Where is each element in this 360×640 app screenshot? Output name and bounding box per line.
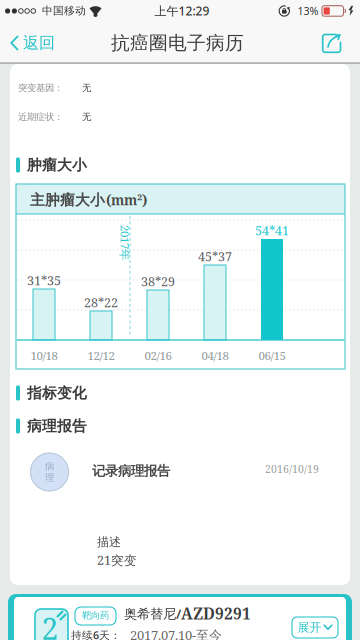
staticText: 12/12: [87, 348, 114, 363]
staticText: 近期症状：: [18, 111, 63, 123]
staticText: 28*22: [84, 294, 118, 311]
staticText: 31*35: [27, 272, 61, 289]
button[interactable]: 返回: [10, 23, 68, 63]
staticText: 描述: [97, 535, 121, 549]
staticText: 04/18: [201, 348, 228, 363]
staticText: 02/16: [144, 348, 171, 363]
staticText: 奥希替尼/: [124, 605, 181, 622]
staticText: 抗癌圈电子病历: [111, 31, 244, 54]
staticText: 病理报告: [27, 417, 87, 435]
staticText: 06/15: [258, 348, 285, 363]
staticText: 持续6天：: [71, 628, 121, 640]
staticText: 展开: [297, 620, 321, 635]
staticText: 38*29: [141, 273, 175, 290]
staticText: 2017.07.10-至今: [130, 626, 222, 640]
staticText: 无: [82, 111, 91, 123]
staticText: 中国移动: [42, 4, 86, 17]
staticText: AZD9291: [181, 603, 251, 624]
staticText: 10/18: [30, 348, 57, 363]
staticText: (mm²): [106, 191, 147, 209]
staticText: 无: [82, 82, 91, 94]
staticText: 2016/10/19: [265, 462, 319, 476]
staticText: 2017年: [107, 235, 143, 251]
staticText: 指标变化: [27, 384, 87, 402]
staticText: 理: [45, 472, 54, 483]
staticText: 病: [45, 460, 54, 472]
staticText: 靶向药: [82, 610, 109, 621]
staticText: 54*41: [255, 222, 289, 239]
staticText: 2: [41, 608, 58, 640]
staticText: 45*37: [198, 248, 232, 265]
staticText: 返回: [23, 33, 55, 53]
button[interactable]: 病: [10, 441, 350, 497]
staticText: 突变基因：: [18, 82, 63, 94]
button[interactable]: 编辑: [311, 22, 352, 63]
staticText: 肿瘤大小: [27, 156, 87, 174]
staticText: 上午12:29: [154, 3, 209, 19]
staticText: 主肿瘤大小: [30, 191, 105, 209]
button[interactable]: 展开: [292, 617, 338, 638]
staticText: 13%: [297, 4, 318, 18]
staticText: 21突变: [97, 551, 137, 568]
staticText: 记录病理报告: [92, 463, 170, 479]
